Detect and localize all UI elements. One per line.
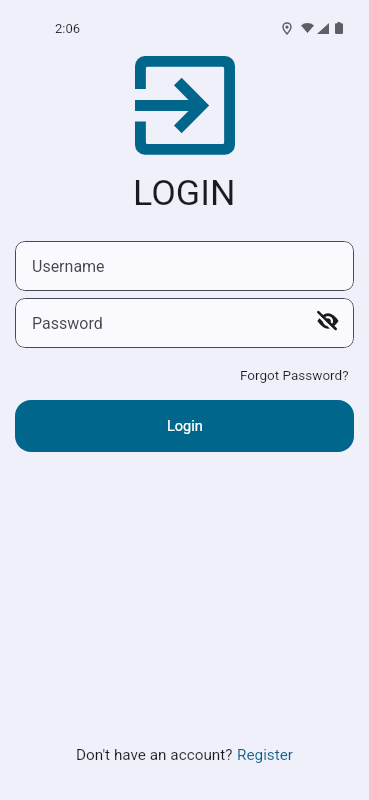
button[interactable]: Login [15,400,354,452]
staticText: Register [237,746,294,764]
staticText: Username [32,257,105,276]
button[interactable]: Password [15,298,354,348]
staticText: Login [167,418,203,435]
button[interactable]: Show password [314,307,342,335]
staticText: 2:06 [55,21,81,36]
staticText: Password [32,314,103,333]
staticText: LOGIN [133,172,236,214]
button[interactable]: Register [237,746,294,764]
staticText: Forgot Password? [240,367,349,383]
button[interactable]: Username [15,241,354,291]
button[interactable]: Forgot Password? [238,364,351,386]
staticText: Don't have an account? [76,746,237,764]
